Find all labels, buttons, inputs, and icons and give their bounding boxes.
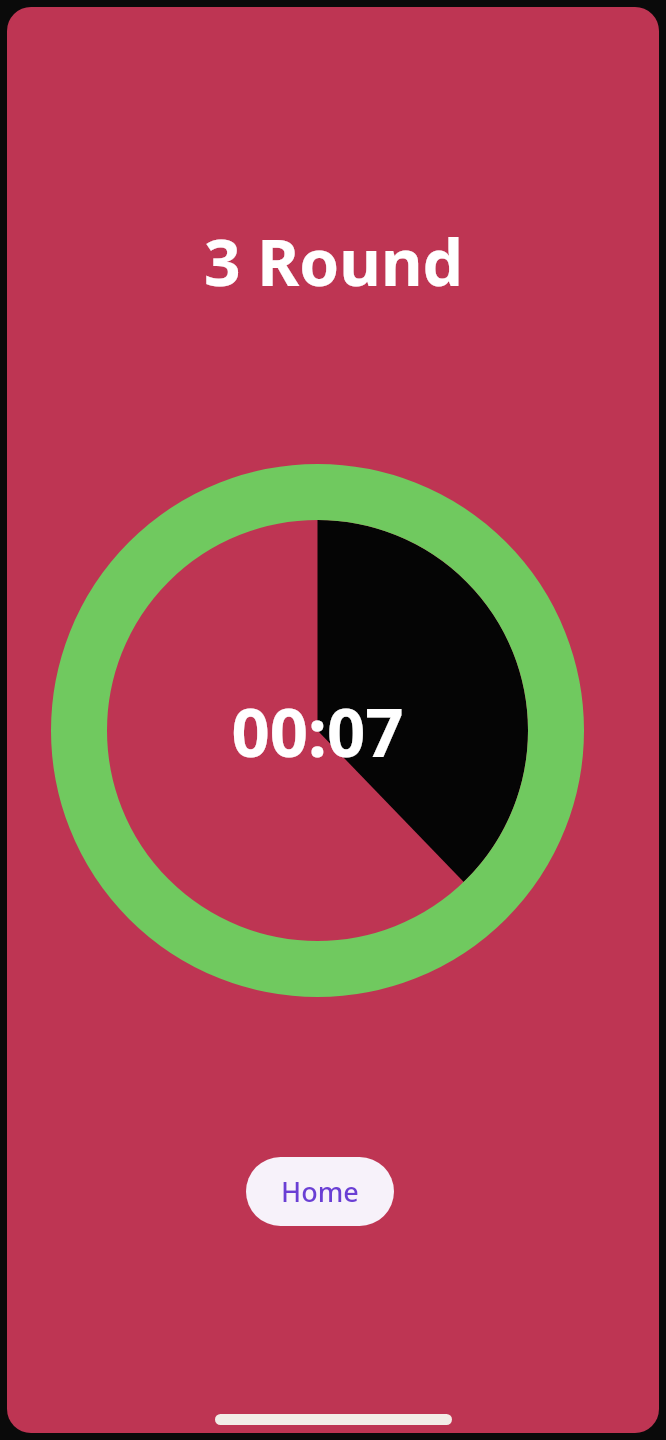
button[interactable]: Home xyxy=(246,1157,394,1226)
staticText: 00:07 xyxy=(231,685,404,776)
staticText: Home xyxy=(281,1173,359,1210)
staticText: 3 Round xyxy=(204,218,463,305)
